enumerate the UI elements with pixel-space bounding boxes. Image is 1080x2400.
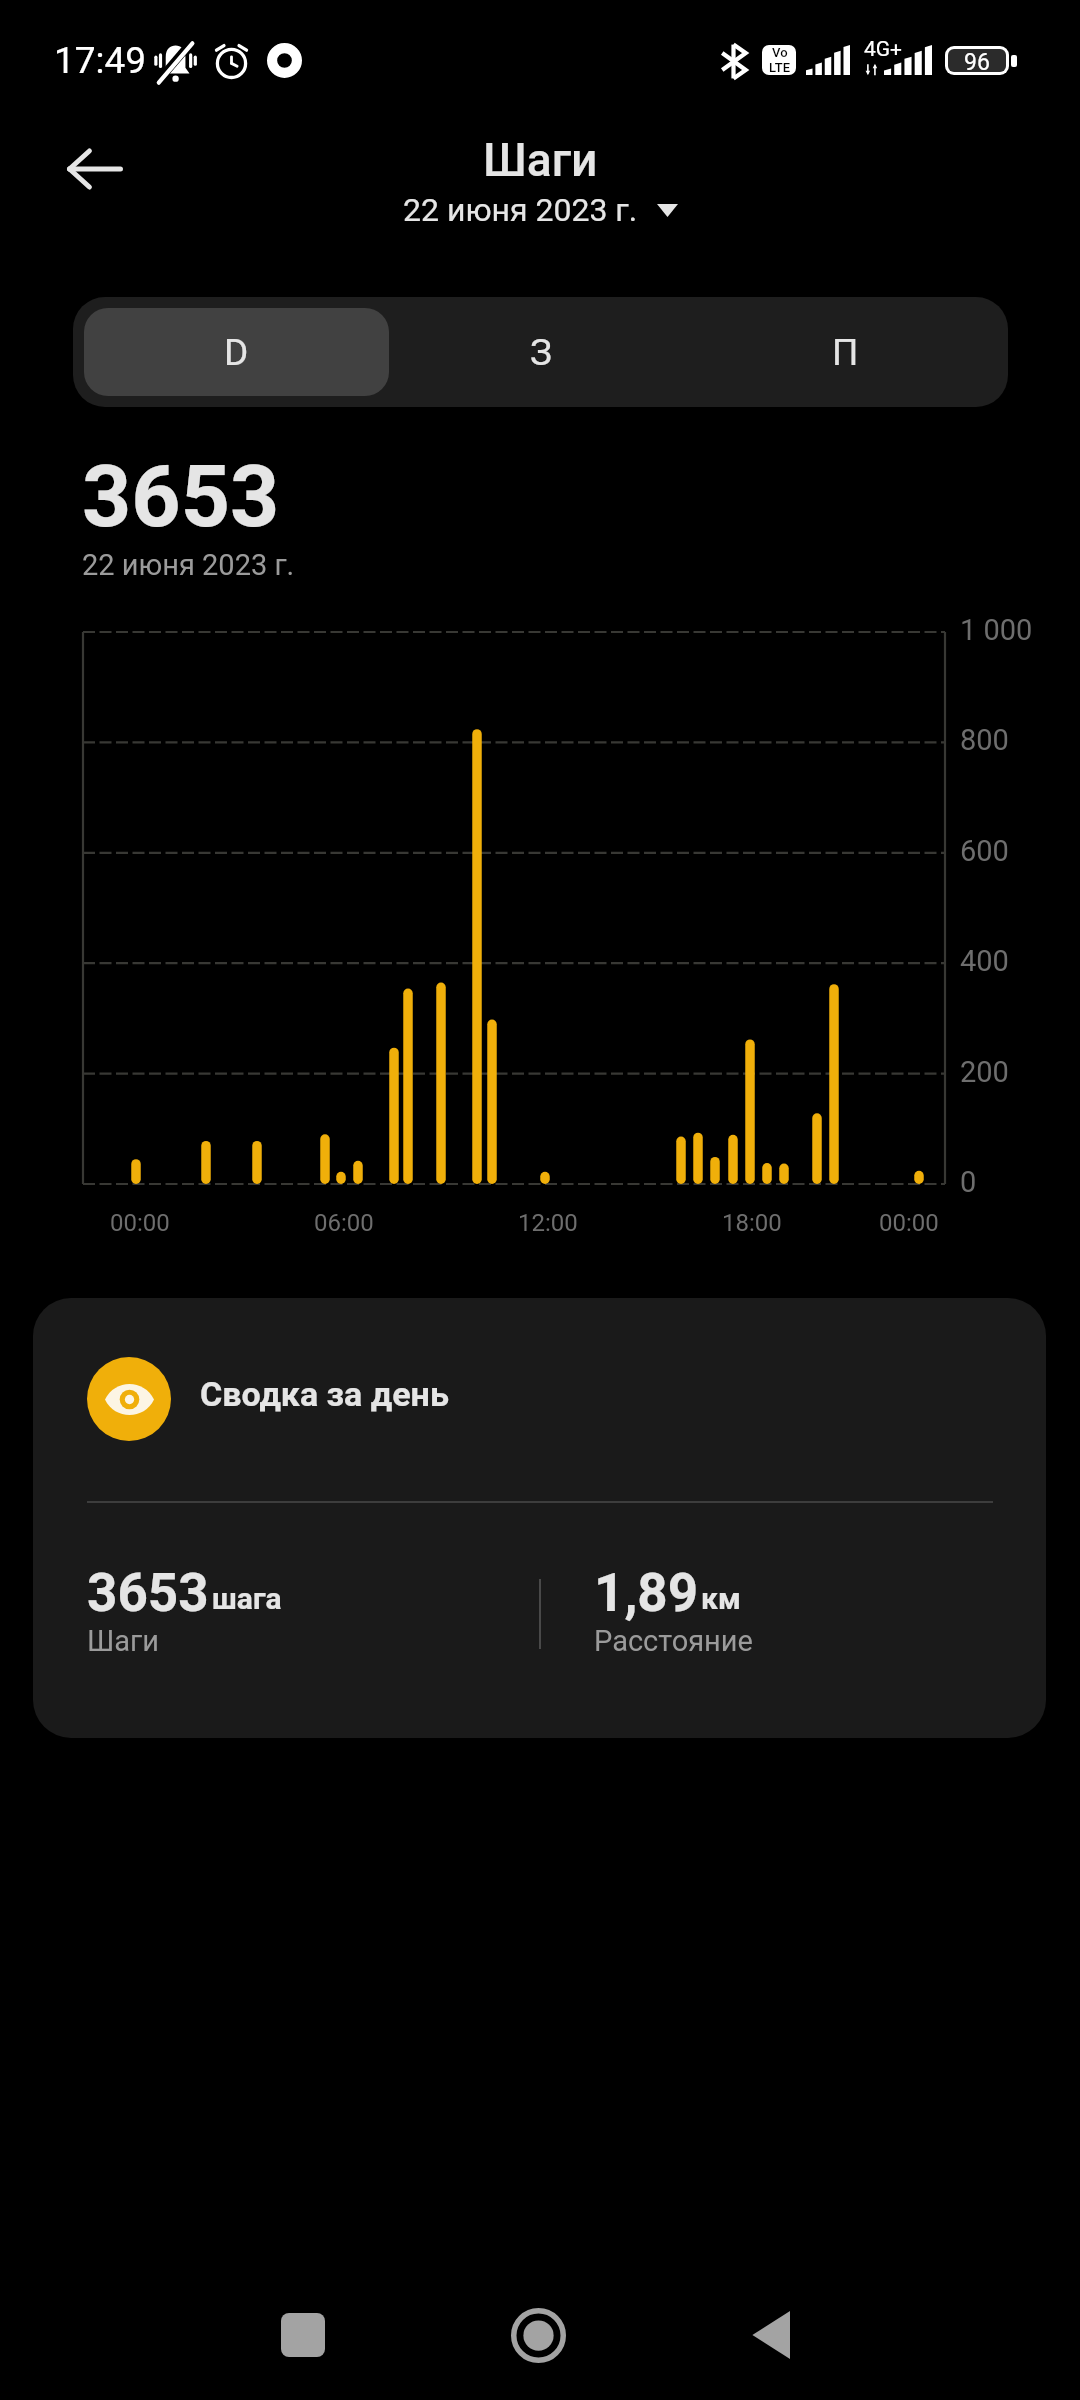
staticText: 3653 <box>82 446 280 547</box>
staticText: 17:49 <box>54 39 147 82</box>
staticText: Расстояние <box>594 1624 753 1658</box>
staticText: Шаги <box>87 1624 159 1658</box>
staticText: Vo <box>772 45 788 60</box>
button[interactable]: D <box>84 308 389 396</box>
staticText: 00:00 <box>879 1209 939 1237</box>
staticText: D <box>224 331 249 374</box>
button[interactable]: Сводка за день <box>33 1298 1046 1738</box>
staticText: 800 <box>960 723 1009 757</box>
staticText: 12:00 <box>518 1209 578 1237</box>
button[interactable]: 22 июня 2023 г. <box>385 183 696 237</box>
button[interactable]: П <box>693 308 997 396</box>
staticText: 22 июня 2023 г. <box>82 548 295 582</box>
button[interactable]: Recent apps <box>213 2245 393 2400</box>
staticText: Шаги <box>483 133 598 187</box>
button[interactable]: Home <box>448 2245 628 2400</box>
staticText: 18:00 <box>722 1209 782 1237</box>
button[interactable]: Back <box>40 114 150 224</box>
staticText: 22 июня 2023 г. <box>403 191 638 229</box>
button[interactable]: Back <box>680 2245 860 2400</box>
staticText: 600 <box>960 834 1009 868</box>
staticText: 3653 <box>87 1562 209 1624</box>
staticText: 400 <box>960 944 1009 978</box>
staticText: Сводка за день <box>200 1374 449 1414</box>
button[interactable]: З <box>389 308 693 396</box>
staticText: 200 <box>960 1055 1009 1089</box>
staticText: 96 <box>964 49 990 72</box>
staticText: 00:00 <box>110 1209 170 1237</box>
staticText: 4G+ <box>864 37 903 62</box>
staticText: 1,89 <box>594 1562 699 1624</box>
staticText: З <box>530 331 552 374</box>
staticText: км <box>701 1581 741 1616</box>
staticText: 1 000 <box>960 613 1033 647</box>
staticText: LTE <box>769 60 790 75</box>
staticText: 0 <box>960 1165 977 1199</box>
staticText: П <box>832 331 859 374</box>
staticText: 06:00 <box>314 1209 374 1237</box>
staticText: шага <box>212 1581 282 1616</box>
